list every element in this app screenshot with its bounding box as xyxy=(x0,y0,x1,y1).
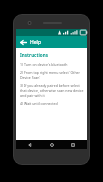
staticText: Instructions xyxy=(20,52,49,58)
staticText: 2) From top right menu select 'Other Dev… xyxy=(20,70,84,80)
button[interactable]: 4) Wait until connected xyxy=(20,101,84,106)
button[interactable]: Back xyxy=(18,37,28,47)
staticText: 4) Wait until connected xyxy=(20,101,58,106)
staticText: 1) Turn on device's bluetooth xyxy=(20,62,68,67)
button[interactable]: Back xyxy=(23,140,37,149)
button[interactable]: 2) From top right menu select 'Other Dev… xyxy=(20,70,84,80)
button[interactable]: 3) If you already paired before select t… xyxy=(20,83,84,98)
staticText: 3) If you already paired before select t… xyxy=(20,83,84,98)
button[interactable]: Home xyxy=(45,140,59,149)
button[interactable]: Recent apps xyxy=(66,140,80,149)
button[interactable]: 1) Turn on device's bluetooth xyxy=(20,62,84,67)
staticText: Help xyxy=(30,39,42,46)
